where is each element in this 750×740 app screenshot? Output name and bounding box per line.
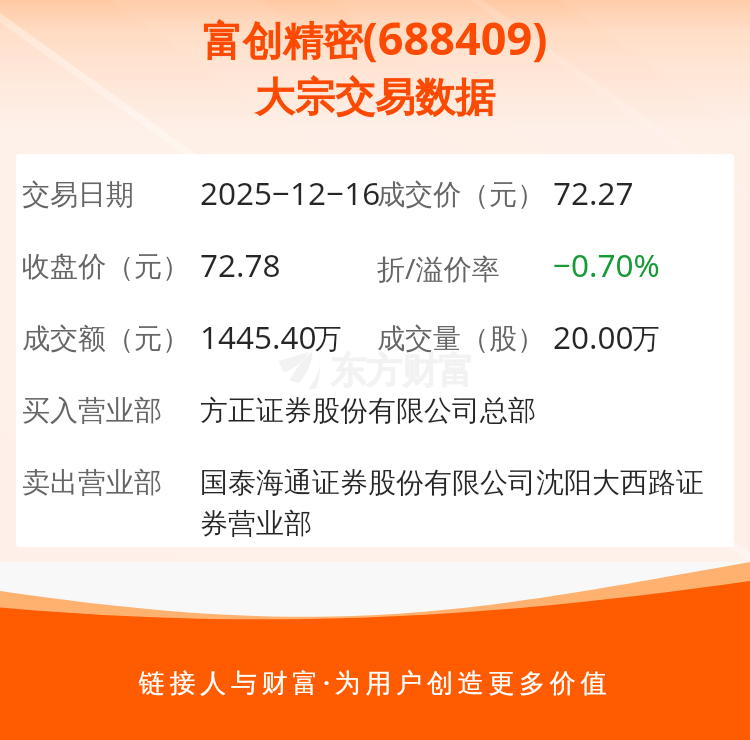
staticText: 富创精密(688409) [0, 7, 750, 68]
staticText: 20.00 [553, 315, 634, 358]
staticText: 收盘价（元） [22, 249, 190, 284]
staticText: 卖出营业部 [22, 465, 162, 500]
staticText: 72.27 [553, 171, 634, 214]
staticText: 成交额（元） [22, 321, 190, 356]
staticText: 链接人与财富·为用户创造更多价值 [0, 664, 750, 700]
staticText: 大宗交易数据 [0, 72, 750, 122]
staticText: 成交量（股） [377, 321, 545, 356]
staticText: 72.78 [200, 243, 281, 286]
button[interactable] [16, 410, 734, 482]
button[interactable]: 链接人与财富·为用户创造更多价值 [0, 626, 750, 740]
staticText: 方正证券股份有限公司总部 [200, 393, 536, 428]
staticText: 国泰海通证券股份有限公司沈阳大西路证券营业部 [200, 465, 706, 541]
staticText: 1445.40 [200, 315, 317, 358]
staticText: 买入营业部 [22, 393, 162, 428]
button[interactable]: 富创精密(688409) [0, 0, 750, 130]
staticText: 2025−12−16 [200, 171, 381, 214]
button[interactable] [16, 482, 734, 547]
staticText: 万 [632, 321, 660, 356]
staticText: −0.70% [553, 243, 660, 286]
staticText: 东方财富 [330, 348, 474, 393]
staticText: 万 [314, 321, 342, 356]
staticText: 交易日期 [22, 177, 134, 212]
button[interactable] [16, 194, 734, 266]
button[interactable] [16, 338, 734, 410]
button[interactable] [16, 266, 734, 338]
staticText: 成交价（元） [377, 177, 545, 212]
staticText: 折/溢价率 [377, 249, 500, 287]
